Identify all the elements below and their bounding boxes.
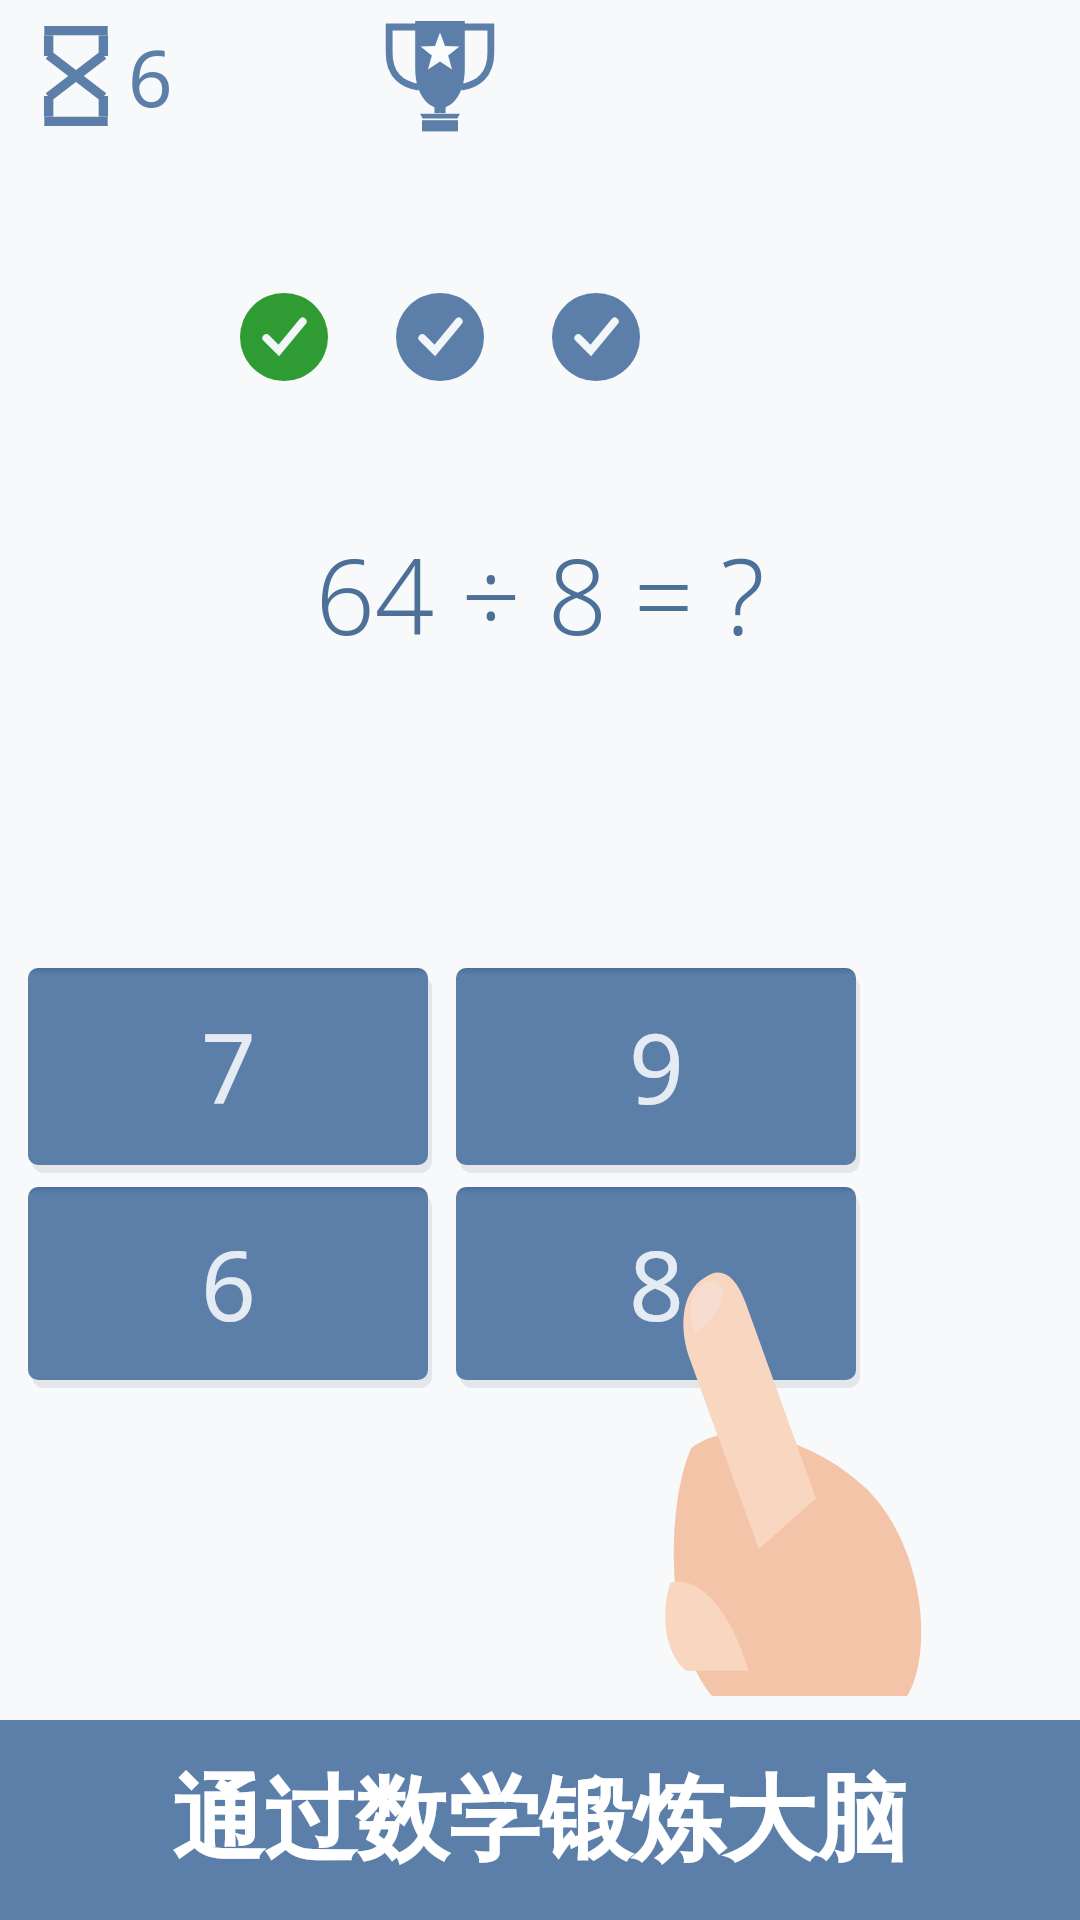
button[interactable]: Time remaining 6: [36, 22, 226, 132]
staticText: 64 ÷ 8 = ?: [315, 524, 765, 666]
button[interactable]: Question completed: [552, 293, 640, 381]
staticText: 6: [128, 24, 173, 130]
staticText: 6: [201, 1218, 256, 1349]
button[interactable]: 7: [28, 968, 428, 1165]
button[interactable]: 通过数学锻炼大脑: [0, 1720, 1080, 1920]
button[interactable]: Question completed: [240, 293, 328, 381]
staticText: 9: [629, 1001, 684, 1132]
staticText: 7: [201, 1001, 256, 1132]
button[interactable]: 9: [456, 968, 856, 1165]
staticText: 通过数学锻炼大脑: [172, 1762, 908, 1878]
button[interactable]: Trophy, achievements: [378, 14, 502, 132]
button[interactable]: 6: [28, 1187, 428, 1380]
button[interactable]: 8: [456, 1187, 856, 1380]
staticText: 8: [629, 1218, 684, 1349]
button[interactable]: Question completed: [396, 293, 484, 381]
